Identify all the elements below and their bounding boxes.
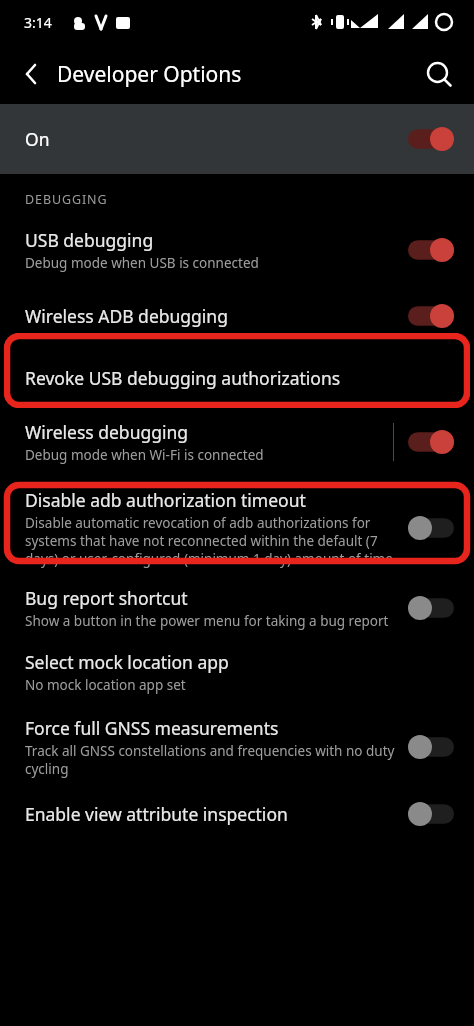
button[interactable]: Enable view attribute inspection [0,788,474,840]
button[interactable]: Disable adb authorization timeout [0,478,474,578]
staticText: Disable adb authorization timeout [25,488,306,512]
staticText: Developer Options [57,60,242,89]
button[interactable]: On [0,104,474,174]
button[interactable]: Back [0,50,48,98]
staticText: On [25,127,408,151]
button[interactable]: Force full GNSS measurements [0,706,474,788]
staticText: Wireless debugging [25,420,189,444]
staticText: No mock location app set [25,676,186,694]
staticText: Enable view attribute inspection [25,802,288,826]
button[interactable]: Wireless debugging [0,406,474,478]
button[interactable]: Revoke USB debugging authorizations [0,350,474,406]
staticText: USB debugging [25,228,154,252]
button[interactable]: Select mock location app [0,638,474,706]
staticText: Track all GNSS constellations and freque… [25,742,408,778]
staticText: Revoke USB debugging authorizations [25,366,341,390]
staticText: Show a button in the power menu for taki… [25,612,389,630]
staticText: Debug mode when Wi-Fi is connected [25,446,264,464]
staticText: Debug mode when USB is connected [25,254,259,272]
button[interactable]: USB debugging [0,222,474,282]
staticText: DEBUGGING [25,191,108,208]
staticText: Force full GNSS measurements [25,716,279,740]
button[interactable]: Wireless ADB debugging [0,282,474,350]
button[interactable]: Search [421,56,457,92]
staticText: Bug report shortcut [25,586,188,610]
staticText: Wireless ADB debugging [25,304,228,328]
staticText: 3:14 [24,13,52,32]
staticText: Select mock location app [25,650,229,674]
button[interactable]: Bug report shortcut [0,578,474,638]
staticText: Disable automatic revocation of adb auth… [25,514,408,568]
